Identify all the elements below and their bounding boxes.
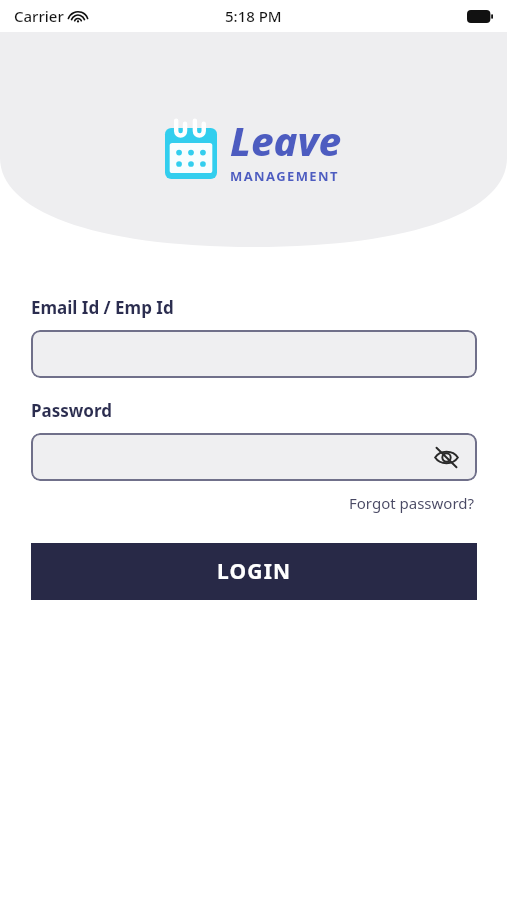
staticText: Leave: [230, 113, 342, 167]
button[interactable]: LOGIN: [31, 543, 477, 600]
staticText: Email Id / Emp Id: [31, 296, 174, 319]
staticText: MANAGEMENT: [230, 167, 339, 185]
staticText: Password: [31, 399, 112, 422]
button[interactable]: Show password: [429, 440, 463, 474]
staticText: Carrier: [14, 6, 64, 26]
button[interactable]: [31, 330, 477, 378]
staticText: 5:18 PM: [225, 6, 282, 26]
button[interactable]: Show password: [31, 433, 477, 481]
button[interactable]: Forgot password?: [347, 491, 477, 515]
staticText: LOGIN: [217, 557, 292, 586]
